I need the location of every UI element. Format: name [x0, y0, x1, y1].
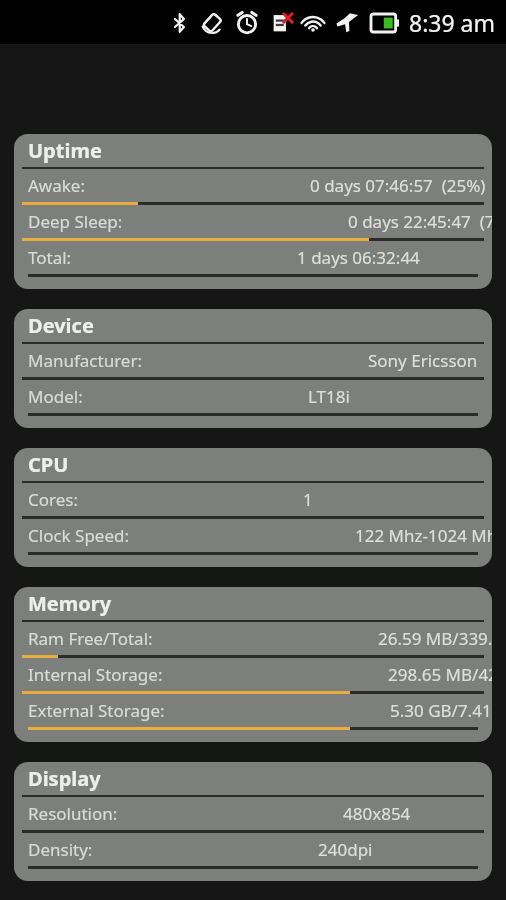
staticText: Clock Speed:	[28, 524, 130, 547]
staticText: Total:	[28, 246, 72, 269]
staticText: 8:39 am	[409, 7, 496, 38]
staticText: 26.59 MB/339.89 MB	[378, 627, 492, 650]
staticText: Sony Ericsson	[368, 349, 478, 372]
staticText: 1	[303, 488, 313, 511]
staticText: Display	[28, 765, 101, 792]
staticText: Density:	[28, 838, 93, 861]
staticText: Resolution:	[28, 802, 118, 825]
staticText: 240dpi	[318, 838, 373, 861]
staticText: 0 days 07:46:57 (25%)	[310, 174, 486, 197]
button[interactable]: CPU	[14, 448, 492, 567]
staticText: External Storage:	[28, 699, 165, 722]
button[interactable]: Display	[14, 762, 492, 881]
staticText: Awake:	[28, 174, 85, 197]
staticText: Ram Free/Total:	[28, 627, 153, 650]
staticText: 5.30 GB/7.41 GB	[390, 699, 492, 722]
staticText: LT18i	[308, 385, 350, 408]
staticText: Internal Storage:	[28, 663, 163, 686]
button[interactable]: Memory	[14, 587, 492, 742]
staticText: Memory	[28, 590, 112, 617]
staticText: CPU	[28, 451, 69, 478]
staticText: 1 days 06:32:44	[297, 246, 420, 269]
button[interactable]: Uptime	[14, 134, 492, 289]
staticText: Uptime	[28, 137, 102, 164]
staticText: Device	[28, 312, 94, 339]
button[interactable]: Device	[14, 309, 492, 428]
staticText: Manufacturer:	[28, 349, 143, 372]
staticText: Deep Sleep:	[28, 210, 123, 233]
staticText: 298.65 MB/420.00 MB	[388, 663, 492, 686]
staticText: 480x854	[343, 802, 411, 825]
staticText: 0 days 22:45:47 (75%)	[348, 210, 492, 233]
staticText: Cores:	[28, 488, 78, 511]
staticText: 122 Mhz-1024 Mhz	[355, 524, 492, 547]
staticText: Model:	[28, 385, 83, 408]
